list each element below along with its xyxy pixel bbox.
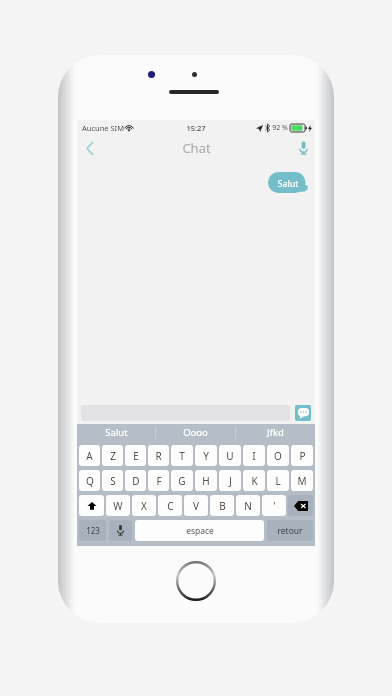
staticText: Salut — [105, 426, 128, 439]
button[interactable]: D — [125, 470, 146, 491]
button[interactable]: V — [184, 495, 208, 516]
staticText: U — [226, 449, 234, 463]
button[interactable]: J — [219, 470, 241, 491]
staticText: Salut — [277, 177, 299, 189]
button[interactable]: F — [148, 470, 169, 491]
button[interactable]: Salut — [77, 424, 155, 441]
staticText: T — [179, 449, 185, 463]
button[interactable]: E — [125, 445, 146, 466]
button[interactable]: A — [79, 445, 100, 466]
button[interactable]: C — [158, 495, 182, 516]
staticText: K — [251, 474, 258, 488]
staticText: W — [113, 499, 123, 513]
button[interactable]: T — [171, 445, 193, 466]
staticText: Q — [86, 474, 94, 488]
button[interactable]: espace — [135, 520, 264, 541]
button[interactable]: retour — [267, 520, 313, 541]
staticText: G — [178, 474, 186, 488]
button[interactable]: Back — [77, 136, 101, 160]
button[interactable]: S — [102, 470, 123, 491]
staticText: ' — [273, 499, 276, 513]
button[interactable]: Jfkd — [236, 424, 315, 441]
button[interactable]: M — [291, 470, 313, 491]
button[interactable]: N — [236, 495, 260, 516]
staticText: C — [167, 499, 174, 513]
staticText: espace — [186, 525, 214, 537]
button[interactable]: K — [243, 470, 265, 491]
button[interactable]: P — [291, 445, 313, 466]
button[interactable]: X — [132, 495, 156, 516]
staticText: D — [132, 474, 140, 488]
staticText: Z — [110, 449, 116, 463]
staticText: O — [274, 449, 282, 463]
staticText: F — [156, 474, 162, 488]
staticText: V — [193, 499, 199, 513]
staticText: 15:27 — [186, 123, 206, 133]
staticText: J — [229, 474, 232, 488]
button[interactable]: I — [243, 445, 265, 466]
button[interactable]: Backspace — [288, 495, 313, 516]
button[interactable]: Salut — [268, 172, 308, 193]
staticText: E — [133, 449, 139, 463]
button[interactable]: Dictation — [109, 520, 132, 541]
button[interactable]: Z — [102, 445, 123, 466]
button[interactable]: Oooo — [156, 424, 235, 441]
staticText: P — [299, 449, 306, 463]
staticText: Oooo — [183, 426, 208, 439]
staticText: M — [297, 474, 307, 488]
button[interactable]: ' — [262, 495, 286, 516]
button[interactable]: Y — [195, 445, 217, 466]
staticText: 92 % — [272, 123, 288, 133]
button[interactable]: B — [210, 495, 234, 516]
staticText: S — [110, 474, 116, 488]
button[interactable]: Shift — [79, 495, 104, 516]
button[interactable]: W — [106, 495, 130, 516]
button[interactable]: O — [267, 445, 289, 466]
staticText: Aucune SIM — [82, 123, 124, 133]
staticText: retour — [277, 525, 303, 537]
staticText: A — [86, 449, 93, 463]
staticText: L — [275, 474, 281, 488]
button[interactable]: L — [267, 470, 289, 491]
button[interactable]: H — [195, 470, 217, 491]
button[interactable]: 123 — [79, 520, 106, 541]
staticText: X — [141, 499, 147, 513]
button[interactable]: Q — [79, 470, 100, 491]
button[interactable]: Send message — [295, 405, 311, 421]
staticText: Jfkd — [267, 426, 284, 439]
button[interactable]: Voice input — [291, 136, 315, 160]
staticText: B — [219, 499, 226, 513]
staticText: I — [252, 449, 256, 463]
staticText: R — [155, 449, 162, 463]
staticText: Y — [203, 449, 209, 463]
staticText: N — [244, 499, 252, 513]
staticText: H — [202, 474, 210, 488]
button[interactable]: G — [171, 470, 193, 491]
staticText: 123 — [86, 525, 100, 536]
button[interactable]: U — [219, 445, 241, 466]
button[interactable]: R — [148, 445, 169, 466]
staticText: Chat — [182, 139, 211, 157]
